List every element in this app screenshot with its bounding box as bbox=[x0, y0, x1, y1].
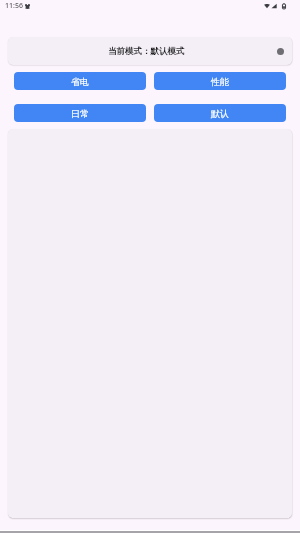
staticText: 默认 bbox=[211, 108, 229, 119]
button[interactable]: 当前模式：默认模式 bbox=[8, 37, 292, 65]
button[interactable]: 省电 bbox=[14, 72, 146, 90]
button[interactable]: 默认 bbox=[154, 104, 286, 122]
button[interactable]: Mode status indicator bbox=[277, 48, 284, 55]
staticText: 性能 bbox=[211, 76, 229, 87]
staticText: 日常 bbox=[71, 108, 89, 119]
staticText: 当前模式：默认模式 bbox=[108, 46, 185, 57]
staticText: 省电 bbox=[71, 76, 89, 87]
button[interactable]: 日常 bbox=[14, 104, 146, 122]
staticText: 11:56 bbox=[5, 1, 23, 11]
button[interactable]: 性能 bbox=[154, 72, 286, 90]
